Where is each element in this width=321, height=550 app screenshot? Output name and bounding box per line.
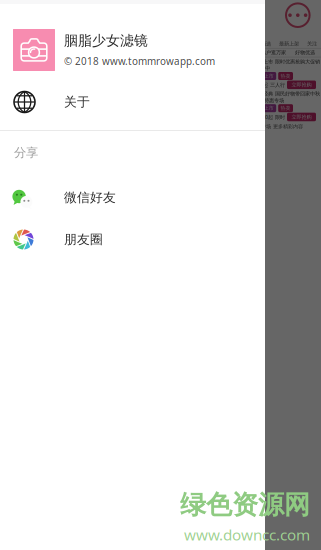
staticText: 胭脂少女滤镜 <box>64 32 148 49</box>
staticText: 足不出户逛万家 <box>251 49 286 56</box>
staticText: © 2018 www.tommrowapp.com <box>64 54 215 68</box>
staticText: 绿色资源网 <box>180 488 310 521</box>
button[interactable]: 关于 <box>0 80 265 124</box>
staticText: 立即抢购 <box>291 114 311 120</box>
button[interactable]: 朋友圈 <box>0 218 265 261</box>
staticText: 新品上市 <box>254 73 274 79</box>
staticText: www.downcc.com <box>184 524 310 545</box>
staticText: 热卖 <box>281 105 291 111</box>
staticText: 甜蜜上市 限时优惠抢购大促销 <box>253 58 320 65</box>
staticText: 朋友圈 <box>64 231 103 247</box>
staticText: 十年经典 国民好物带回家中秋 <box>253 91 320 97</box>
staticText: 分享 <box>14 145 38 160</box>
staticText: 特惠专场 <box>264 97 284 104</box>
staticText: 好物优选 <box>295 49 315 56</box>
staticText: 立即抢购 <box>291 81 311 88</box>
staticText: 新品上市 <box>254 105 274 111</box>
staticText: 最新上架 <box>279 40 299 47</box>
staticText: 新货 上新专场 更多精彩内容 <box>239 123 303 130</box>
staticText: 关于 <box>64 94 90 110</box>
staticText: 关注 <box>307 40 317 47</box>
staticText: ¥128.00起 三人行 <box>244 81 285 88</box>
staticText: 中 <box>265 65 270 72</box>
staticText: 热卖 <box>281 73 291 79</box>
staticText: 微信好友 <box>64 189 116 205</box>
staticText: ¥88.00起 限时 <box>252 113 285 120</box>
staticText: 分类精选 <box>251 40 271 47</box>
button[interactable]: 微信好友 <box>0 178 265 221</box>
